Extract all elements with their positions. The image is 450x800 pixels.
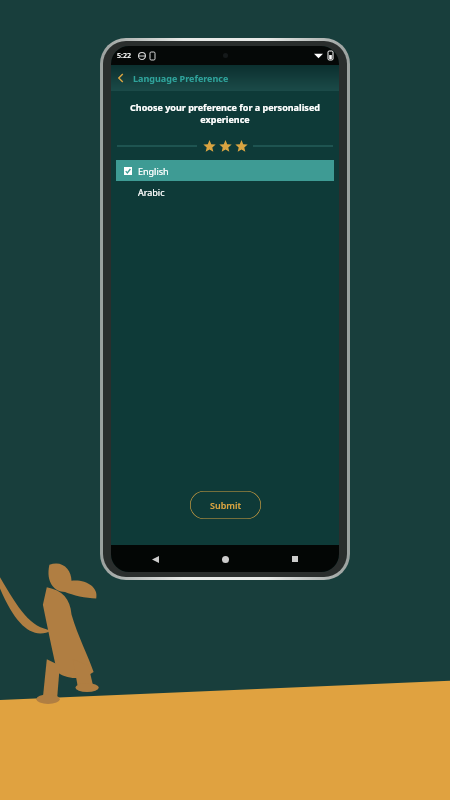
staticText: Arabic xyxy=(138,186,165,198)
button[interactable]: Recents xyxy=(285,549,305,569)
button[interactable]: Submit xyxy=(190,491,261,519)
staticText: English xyxy=(138,165,169,177)
staticText: Submit xyxy=(210,499,242,511)
button[interactable]: English xyxy=(116,160,334,181)
staticText: Language Preference xyxy=(133,72,229,84)
staticText: Choose your preference for a personalise… xyxy=(121,101,329,126)
staticText: 5:22 xyxy=(117,51,131,61)
button[interactable]: Arabic xyxy=(116,181,334,202)
button[interactable]: Back xyxy=(145,549,165,569)
button[interactable]: Home xyxy=(215,549,235,569)
button[interactable]: Back xyxy=(111,68,131,88)
